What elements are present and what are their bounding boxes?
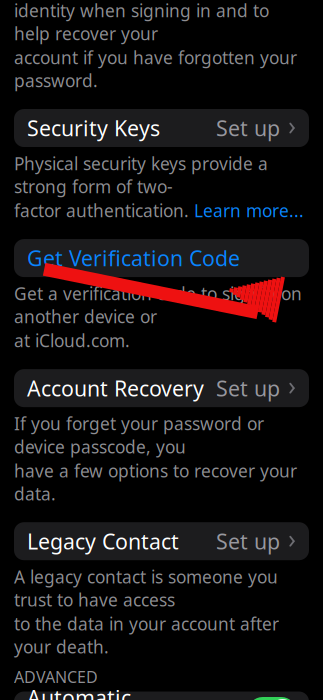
staticText: Set up — [216, 114, 280, 142]
staticText: If you forget your password or device pa… — [14, 412, 264, 458]
staticText: Get Verification Code — [27, 244, 240, 272]
staticText: Set up — [216, 374, 280, 402]
staticText: Learn more... — [194, 199, 304, 222]
staticText: Get a verification code to sign in on an… — [14, 282, 302, 328]
staticText: Legacy Contact — [27, 527, 179, 555]
staticText: Set up — [216, 527, 280, 555]
button[interactable]: Account Recovery — [14, 369, 309, 407]
staticText: identity when signing in and to help rec… — [14, 0, 269, 45]
staticText: have a few options to recover your data. — [14, 459, 297, 505]
button[interactable]: Automatic Verification — [14, 691, 309, 700]
staticText: account if you have forgotten your passw… — [14, 46, 297, 92]
staticText: ADVANCED — [14, 666, 98, 687]
staticText: A legacy contact is someone you trust to… — [14, 565, 278, 611]
staticText: Security Keys — [27, 114, 160, 142]
staticText: to the data in your account after your d… — [14, 612, 279, 658]
button[interactable]: Security Keys — [14, 109, 309, 147]
button[interactable]: Get Verification Code — [14, 239, 309, 277]
staticText: at iCloud.com. — [14, 329, 130, 352]
staticText: Physical security keys provide a strong … — [14, 152, 268, 198]
staticText: Automatic Verification — [27, 683, 141, 700]
button[interactable]: Legacy Contact — [14, 522, 309, 560]
staticText: factor authentication. — [14, 199, 194, 222]
staticText: Account Recovery — [27, 374, 204, 402]
